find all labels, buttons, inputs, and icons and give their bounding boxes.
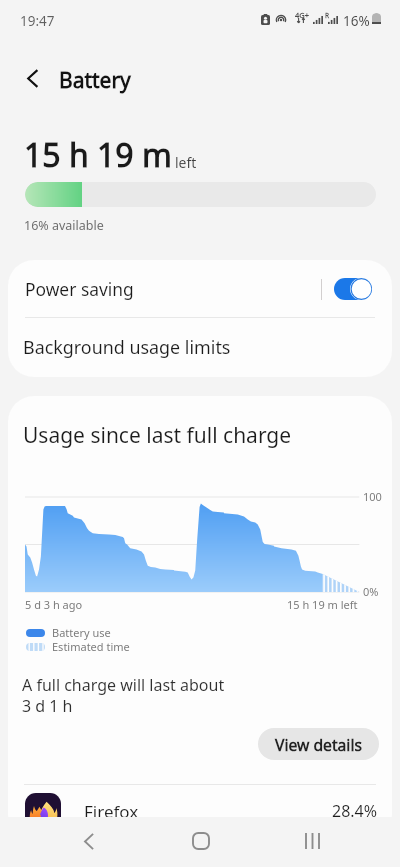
staticText: 15 h 19 m: [24, 133, 172, 177]
button[interactable]: Home: [166, 819, 235, 863]
staticText: 3 d 1 h: [22, 695, 73, 717]
button[interactable]: Background usage limits: [8, 317, 392, 377]
button[interactable]: Firefox: [8, 785, 392, 837]
staticText: 16% available: [24, 217, 104, 234]
staticText: Usage since last full charge: [23, 421, 292, 450]
button[interactable]: Recent apps: [278, 819, 347, 863]
staticText: 19:47: [20, 12, 55, 30]
button[interactable]: Navigate up: [15, 61, 50, 96]
staticText: left: [175, 153, 197, 172]
staticText: Estimated time: [52, 639, 130, 654]
staticText: Firefox: [84, 800, 139, 823]
staticText: 16%: [343, 12, 370, 30]
staticText: 28.4%: [332, 800, 378, 822]
staticText: R: [325, 11, 330, 20]
button[interactable]: Power saving: [8, 260, 392, 317]
staticText: 0%: [363, 584, 379, 599]
button[interactable]: Power saving: [334, 278, 372, 300]
staticText: Power saving: [25, 277, 134, 301]
staticText: Background usage limits: [23, 335, 231, 359]
staticText: 4G+: [295, 10, 310, 20]
staticText: A full charge will last about: [22, 674, 225, 696]
button[interactable]: View details: [258, 728, 379, 760]
staticText: 15 h 19 m left: [287, 597, 358, 612]
staticText: Battery use: [52, 625, 111, 640]
staticText: 100: [363, 489, 382, 504]
staticText: View details: [275, 734, 362, 755]
button[interactable]: Back: [54, 819, 123, 863]
staticText: Battery: [59, 66, 131, 95]
staticText: 5 d 3 h ago: [25, 597, 83, 612]
